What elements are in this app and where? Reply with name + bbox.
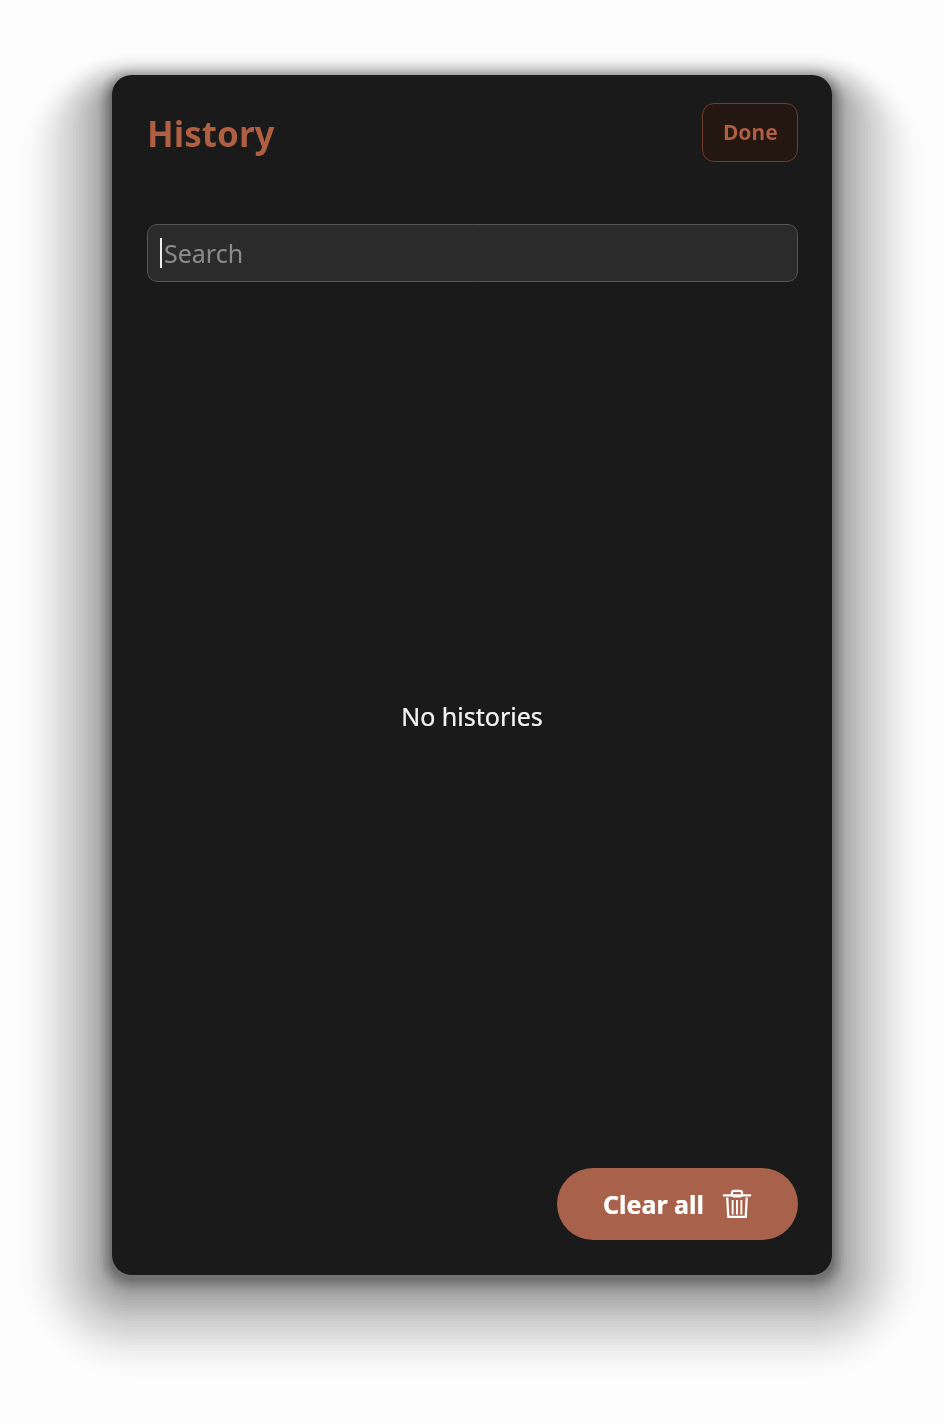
button[interactable]: Done [702,103,798,162]
other: Clear all history [722,1189,752,1219]
button[interactable]: Clear all [557,1168,798,1240]
staticText: History [147,110,275,158]
staticText: Search [164,236,244,270]
staticText: Clear all [603,1187,704,1221]
staticText: No histories [401,699,543,733]
staticText: Done [723,118,778,147]
button[interactable]: Search [147,224,798,282]
